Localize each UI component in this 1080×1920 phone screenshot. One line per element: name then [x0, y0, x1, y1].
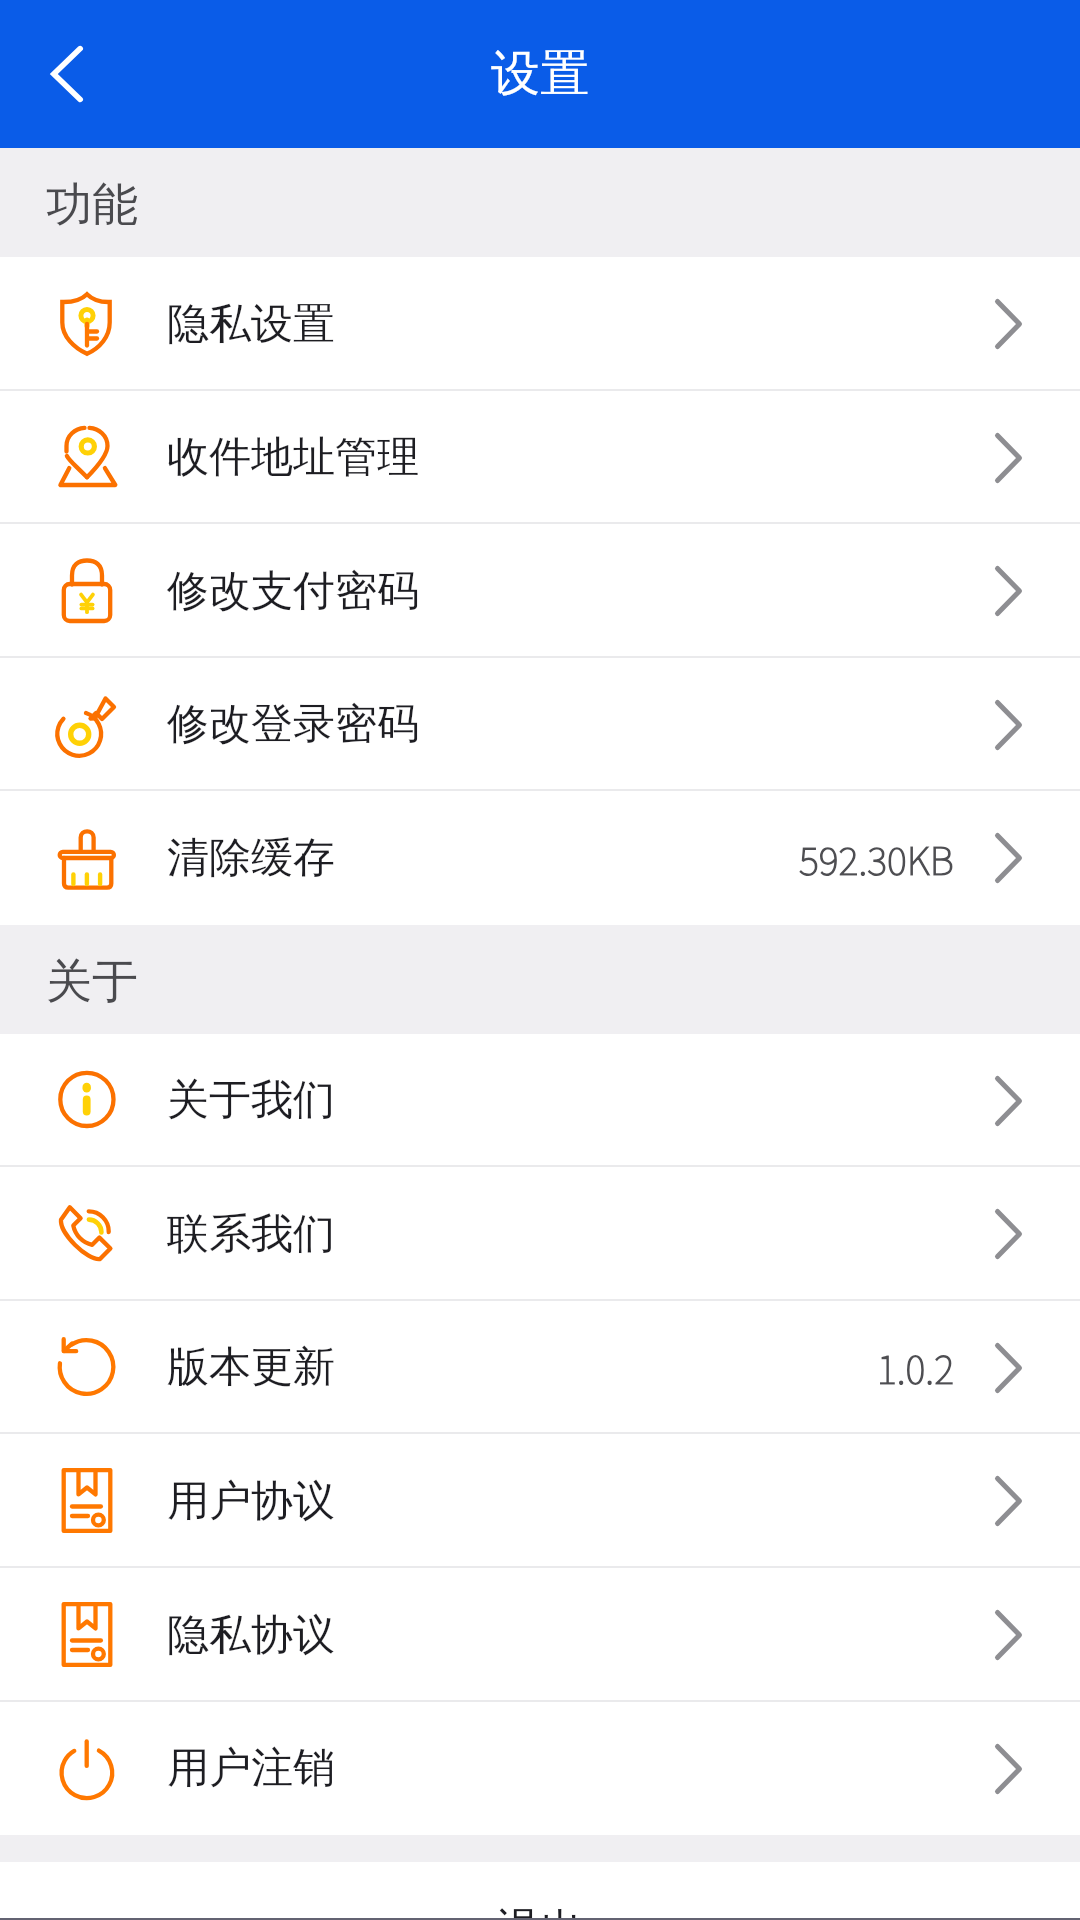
staticText: 592.30KB — [799, 831, 954, 886]
button[interactable]: 联系我们 — [0, 1167, 1080, 1301]
staticText: 修改登录密码 — [167, 698, 419, 751]
staticText: 修改支付密码 — [167, 565, 419, 618]
button[interactable]: 修改支付密码 — [0, 524, 1080, 658]
button[interactable]: 用户协议 — [0, 1434, 1080, 1568]
staticText: 用户注销 — [167, 1742, 335, 1795]
staticText: 用户协议 — [167, 1475, 335, 1528]
staticText: 清除缓存 — [167, 832, 335, 885]
staticText: 隐私设置 — [167, 298, 335, 351]
staticText: 隐私协议 — [167, 1609, 335, 1662]
button[interactable]: 退出 — [0, 1862, 1080, 1920]
button[interactable]: 关于我们 — [0, 1034, 1080, 1167]
staticText: 联系我们 — [167, 1208, 335, 1261]
button[interactable]: 隐私协议 — [0, 1568, 1080, 1702]
button[interactable]: 隐私设置 — [0, 257, 1080, 391]
staticText: 收件地址管理 — [167, 431, 419, 484]
button[interactable]: Back — [0, 0, 134, 148]
staticText: 1.0.2 — [877, 1340, 954, 1395]
button[interactable]: 用户注销 — [0, 1702, 1080, 1835]
button[interactable]: 收件地址管理 — [0, 391, 1080, 524]
button[interactable]: 修改登录密码 — [0, 658, 1080, 791]
staticText: 设置 — [491, 43, 589, 105]
staticText: 退出 — [496, 1903, 584, 1920]
button[interactable]: 清除缓存 — [0, 791, 1080, 925]
button[interactable]: 版本更新 — [0, 1301, 1080, 1434]
staticText: 版本更新 — [167, 1341, 335, 1394]
staticText: 功能 — [46, 176, 138, 234]
staticText: 关于我们 — [167, 1074, 335, 1127]
staticText: 关于 — [46, 953, 138, 1011]
